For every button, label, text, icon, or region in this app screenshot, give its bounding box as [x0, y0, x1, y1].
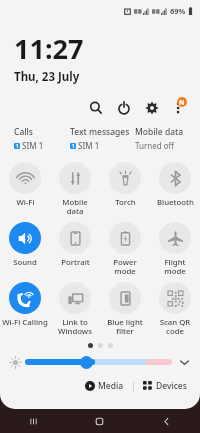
- staticText: Media: [98, 380, 124, 392]
- staticText: SIM 1: [22, 140, 44, 151]
- button[interactable]: Media: [82, 378, 127, 394]
- button[interactable]: More options: [168, 96, 192, 120]
- staticText: Text messages: [70, 126, 130, 138]
- button[interactable]: Home: [66, 409, 133, 433]
- button[interactable]: Bluetooth: [150, 159, 200, 208]
- button[interactable]: Mobile data: [135, 126, 192, 151]
- staticText: Blue light filter: [107, 317, 143, 337]
- staticText: Mobile data: [135, 126, 184, 138]
- staticText: Mobile data: [62, 197, 88, 217]
- button[interactable]: Text messages: [70, 126, 135, 151]
- button[interactable]: Devices: [140, 378, 190, 394]
- button[interactable]: Recents: [0, 409, 66, 433]
- button[interactable]: Blue light filter: [100, 279, 150, 337]
- staticText: Power mode: [113, 257, 137, 277]
- button[interactable]: Search: [86, 98, 106, 118]
- staticText: Turned off: [135, 140, 175, 151]
- staticText: Calls: [14, 126, 33, 138]
- staticText: Bluetooth: [157, 197, 194, 208]
- staticText: Flight mode: [164, 257, 186, 277]
- button[interactable]: Wi-Fi Calling: [0, 279, 50, 328]
- staticText: Torch: [115, 197, 136, 208]
- other: Brightness: [9, 356, 22, 369]
- button[interactable]: Scan QR code: [150, 279, 200, 337]
- staticText: Thu, 23 July: [14, 69, 80, 85]
- button[interactable]: Back: [133, 409, 200, 433]
- button[interactable]: Link to Windows: [50, 279, 100, 337]
- button[interactable]: Torch: [100, 159, 150, 208]
- button[interactable]: Power off: [114, 98, 134, 118]
- staticText: Wi-Fi Calling: [2, 317, 48, 328]
- button[interactable]: Power mode: [100, 219, 150, 277]
- button[interactable]: Calls: [14, 126, 70, 151]
- button[interactable]: [28, 353, 169, 371]
- staticText: Scan QR code: [151, 317, 199, 337]
- staticText: 1: [72, 143, 75, 149]
- staticText: Sound: [13, 257, 37, 268]
- button[interactable]: Mobile data: [50, 159, 100, 217]
- staticText: 1: [16, 143, 19, 149]
- staticText: Portrait: [61, 257, 90, 268]
- staticText: 69%: [170, 6, 186, 16]
- staticText: 11:27: [14, 30, 84, 67]
- button[interactable]: Wi-Fi: [0, 159, 50, 208]
- button[interactable]: Sound: [0, 219, 50, 268]
- button[interactable]: Portrait: [50, 219, 100, 268]
- button[interactable]: Expand brightness settings: [175, 353, 193, 371]
- staticText: Wi-Fi: [16, 197, 35, 208]
- staticText: SIM 1: [78, 140, 100, 151]
- button[interactable]: Settings: [142, 98, 162, 118]
- staticText: Link to Windows: [58, 317, 92, 337]
- button[interactable]: Flight mode: [150, 219, 200, 277]
- staticText: Devices: [156, 380, 187, 392]
- staticText: N: [179, 98, 185, 107]
